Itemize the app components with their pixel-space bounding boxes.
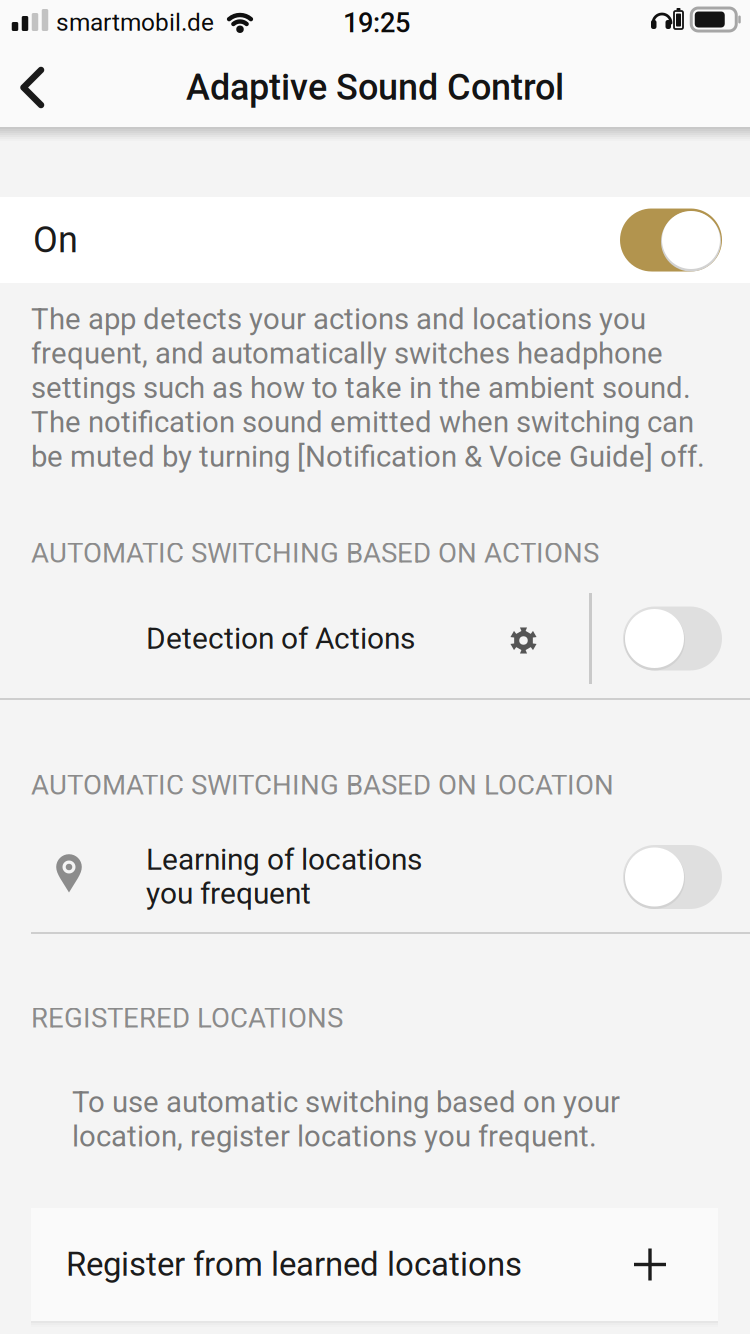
staticText: you frequent xyxy=(146,876,311,911)
staticText: Register from learned locations xyxy=(66,1245,522,1284)
button[interactable]: Register from learned locations xyxy=(31,1208,718,1321)
button[interactable]: Learning of locations xyxy=(0,842,750,912)
staticText: AUTOMATIC SWITCHING BASED ON LOCATION xyxy=(31,769,614,801)
staticText: The app detects your actions and locatio… xyxy=(31,302,705,474)
staticText: On xyxy=(33,219,78,261)
button[interactable]: On xyxy=(0,197,750,283)
staticText: REGISTERED LOCATIONS xyxy=(31,1002,343,1034)
staticText: To use automatic switching based on your… xyxy=(72,1085,620,1154)
button[interactable]: Back xyxy=(0,48,64,127)
staticText: AUTOMATIC SWITCHING BASED ON ACTIONS xyxy=(31,537,599,569)
staticText: Adaptive Sound Control xyxy=(186,66,564,109)
staticText: 19:25 xyxy=(343,7,410,39)
staticText: Detection of Actions xyxy=(146,621,415,656)
staticText: Learning of locations xyxy=(146,842,422,877)
button[interactable]: Detection of Actions xyxy=(0,593,750,684)
staticText: smartmobil.de xyxy=(56,8,214,37)
